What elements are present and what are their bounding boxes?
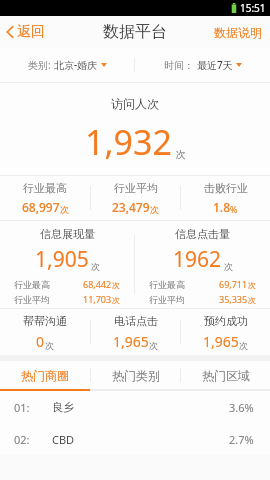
- staticText: 返回: [17, 23, 45, 41]
- staticText: 次: [239, 340, 248, 351]
- staticText: 行业最高: [23, 181, 67, 195]
- staticText: 1,932: [85, 119, 172, 165]
- staticText: 数据平台: [103, 22, 167, 42]
- staticText: 数据说明: [214, 25, 262, 40]
- button[interactable]: 类别:: [0, 48, 134, 82]
- staticText: 行业平均: [114, 181, 158, 195]
- staticText: 热门类别: [112, 368, 160, 383]
- staticText: 北京-婚庆: [54, 58, 98, 72]
- button[interactable]: 帮帮沟通: [0, 309, 90, 355]
- staticText: 3.6%: [229, 400, 254, 415]
- button[interactable]: 行业平均: [91, 176, 180, 220]
- staticText: 类别:: [28, 58, 54, 72]
- staticText: 次: [176, 148, 186, 161]
- staticText: 次: [248, 280, 256, 290]
- staticText: 68,997: [22, 199, 60, 215]
- staticText: 1,965: [113, 332, 149, 351]
- staticText: 0: [36, 332, 45, 351]
- staticText: 访问人次: [111, 96, 159, 111]
- staticText: 行业平均: [14, 294, 50, 305]
- staticText: 最近7天: [197, 58, 233, 72]
- staticText: 23,479: [112, 199, 150, 215]
- button[interactable]: 返回: [0, 19, 53, 45]
- button[interactable]: 预约成功: [181, 309, 270, 355]
- staticText: 次: [150, 204, 159, 215]
- staticText: 35,335: [219, 293, 248, 305]
- button[interactable]: 击败行业: [181, 176, 270, 220]
- staticText: %: [230, 203, 238, 215]
- button[interactable]: 热门商圈: [0, 361, 90, 389]
- staticText: 时间：: [164, 58, 197, 72]
- staticText: 信息展现量: [40, 227, 95, 241]
- staticText: 68,442: [83, 278, 112, 290]
- button[interactable]: 热门区域: [181, 361, 270, 389]
- staticText: 1,965: [203, 332, 239, 351]
- staticText: 02:: [14, 432, 30, 447]
- staticText: 69,711: [219, 278, 248, 290]
- button[interactable]: 信息展现量: [0, 221, 134, 308]
- button[interactable]: 行业最高: [0, 176, 90, 220]
- staticText: 热门区域: [202, 368, 250, 383]
- staticText: 11,703: [83, 293, 112, 305]
- staticText: 15:51: [240, 1, 266, 15]
- staticText: 击败行业: [204, 181, 248, 195]
- button[interactable]: 数据说明: [206, 20, 270, 45]
- staticText: 1962: [173, 245, 222, 274]
- staticText: 次: [112, 295, 120, 305]
- button[interactable]: 01:: [0, 391, 270, 423]
- button[interactable]: 时间：: [135, 48, 270, 82]
- button[interactable]: 热门类别: [91, 361, 180, 389]
- staticText: 信息点击量: [175, 227, 230, 241]
- button[interactable]: 信息点击量: [135, 221, 270, 308]
- staticText: 良乡: [52, 400, 74, 414]
- staticText: 1,905: [35, 245, 89, 274]
- staticText: CBD: [52, 432, 75, 447]
- staticText: 1.8: [213, 199, 230, 215]
- staticText: 行业最高: [149, 279, 185, 290]
- staticText: 次: [91, 261, 100, 272]
- staticText: 次: [224, 261, 233, 272]
- staticText: 次: [149, 340, 158, 351]
- staticText: 行业平均: [149, 294, 185, 305]
- staticText: 预约成功: [204, 314, 248, 328]
- staticText: 次: [60, 204, 69, 215]
- staticText: 次: [112, 280, 120, 290]
- staticText: 2.7%: [229, 432, 254, 447]
- staticText: 热门商圈: [21, 368, 69, 383]
- staticText: 01:: [14, 400, 30, 415]
- button[interactable]: 02:: [0, 423, 270, 455]
- button[interactable]: 电话点击: [91, 309, 180, 355]
- staticText: 次: [45, 340, 54, 351]
- staticText: 电话点击: [114, 314, 158, 328]
- staticText: 次: [248, 295, 256, 305]
- staticText: 行业最高: [14, 279, 50, 290]
- staticText: 帮帮沟通: [23, 314, 67, 328]
